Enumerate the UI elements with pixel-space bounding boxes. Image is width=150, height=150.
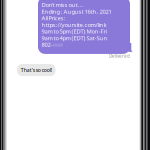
staticText: Don't miss out... — [41, 1, 83, 9]
staticText: 9am to 4pm (EDT) Sat-Sun — [41, 34, 107, 42]
staticText: https://yoursite.com/link — [41, 21, 106, 29]
staticText: 802- — [41, 41, 52, 48]
staticText: Ending : August 16th, 2021 — [41, 8, 111, 15]
staticText: Delivered — [109, 53, 130, 59]
button[interactable]: That's so cool! — [17, 64, 56, 76]
staticText: That's so cool! — [21, 67, 52, 73]
staticText: 9am to 5pm (EDT) Mon-Fri — [41, 27, 106, 35]
staticText: All Prices: — [41, 14, 65, 22]
button[interactable]: Don't miss out... — [38, 0, 130, 54]
